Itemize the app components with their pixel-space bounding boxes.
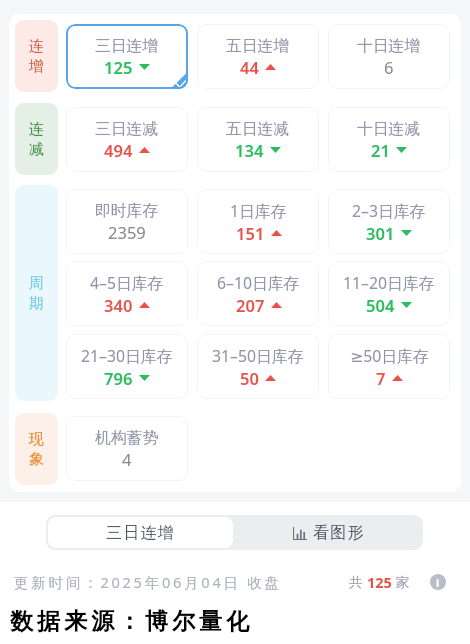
staticText: 机构蓄势 [95, 428, 159, 448]
staticText: 数据来源：博尔量化 [8, 607, 251, 636]
button[interactable]: 21–30日库存 [66, 334, 188, 399]
button[interactable]: 五日连增 [197, 24, 319, 89]
staticText: 134 [235, 139, 264, 161]
button[interactable]: 周 [15, 185, 58, 401]
button[interactable]: 31–50日库存 [197, 334, 319, 399]
button[interactable]: ≥50日库存 [328, 334, 450, 399]
staticText: i [436, 575, 440, 590]
staticText: 4 [122, 448, 132, 470]
staticText: 周 [29, 274, 44, 293]
button[interactable]: 即时库存 [66, 189, 188, 254]
staticText: 207 [236, 294, 265, 316]
staticText: 2359 [108, 221, 146, 243]
staticText: 301 [366, 222, 395, 244]
staticText: 11–20日库存 [343, 272, 435, 294]
staticText: 504 [366, 294, 395, 316]
button[interactable]: 连 [15, 20, 58, 92]
staticText: 连 [29, 120, 44, 139]
button[interactable]: 十日连增 [328, 24, 450, 89]
staticText: ≥50日库存 [350, 345, 429, 367]
staticText: 125 [104, 56, 133, 78]
button[interactable]: Info [430, 574, 446, 590]
button[interactable]: 11–20日库存 [328, 261, 450, 326]
button[interactable]: 十日连减 [328, 107, 450, 172]
staticText: 6–10日库存 [217, 272, 300, 294]
button[interactable]: 三日连增 [48, 517, 233, 548]
staticText: 期 [29, 294, 44, 313]
staticText: 21–30日库存 [81, 345, 173, 367]
staticText: 看图形 [313, 523, 365, 543]
staticText: 4–5日库存 [90, 272, 164, 294]
staticText: 更新时间：2025年06月04日 收盘 [14, 572, 282, 592]
button[interactable]: 看图形 [235, 515, 423, 550]
staticText: 三日连减 [95, 119, 159, 139]
staticText: 7 [376, 367, 386, 389]
staticText: 125 [367, 572, 392, 592]
staticText: 796 [104, 367, 133, 389]
staticText: 21 [371, 139, 390, 161]
staticText: 2–3日库存 [352, 200, 426, 222]
staticText: 减 [29, 140, 44, 159]
staticText: 50 [240, 367, 259, 389]
staticText: 1日库存 [230, 200, 287, 222]
staticText: 44 [240, 56, 259, 78]
staticText: 三日连增 [106, 523, 175, 543]
staticText: 十日连减 [357, 119, 421, 139]
staticText: 494 [104, 139, 133, 161]
staticText: 31–50日库存 [212, 345, 304, 367]
button[interactable]: 4–5日库存 [66, 261, 188, 326]
button[interactable]: 五日连减 [197, 107, 319, 172]
staticText: 151 [236, 222, 265, 244]
staticText: 现 [29, 430, 44, 449]
staticText: 共 [349, 573, 367, 591]
button[interactable]: 6–10日库存 [197, 261, 319, 326]
staticText: 6 [384, 56, 394, 78]
button[interactable]: 2–3日库存 [328, 189, 450, 254]
staticText: 三日连增 [95, 36, 159, 56]
staticText: 家 [392, 573, 410, 591]
staticText: 十日连增 [357, 36, 421, 56]
staticText: 五日连增 [226, 36, 290, 56]
staticText: 连 [29, 37, 44, 56]
staticText: 象 [29, 450, 44, 469]
staticText: 340 [104, 294, 133, 316]
staticText: 五日连减 [226, 119, 290, 139]
staticText: 增 [29, 57, 44, 76]
button[interactable]: 连 [15, 103, 58, 175]
staticText: 即时库存 [95, 201, 159, 221]
button[interactable]: 三日连减 [66, 107, 188, 172]
button[interactable]: 机构蓄势 [66, 416, 188, 481]
button[interactable]: 三日连增 [66, 24, 188, 89]
button[interactable]: 1日库存 [197, 189, 319, 254]
button[interactable]: 现 [15, 413, 58, 485]
